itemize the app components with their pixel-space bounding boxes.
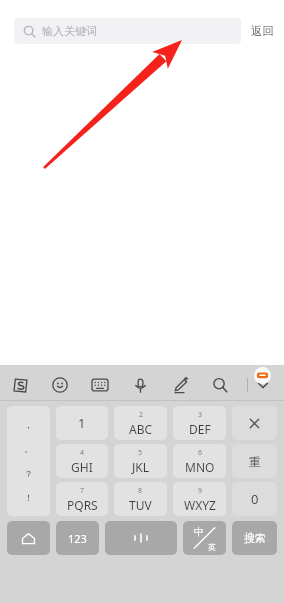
button[interactable]: Notification badge — [254, 367, 271, 384]
staticText: 。 — [24, 443, 33, 454]
button[interactable]: 123 — [56, 521, 99, 555]
staticText: 7 — [80, 486, 85, 496]
button[interactable]: Zero — [232, 482, 277, 516]
button[interactable]: Search — [200, 371, 240, 399]
button[interactable]: 搜索 — [232, 521, 277, 555]
button[interactable]: Sogou input method — [0, 371, 40, 399]
staticText: PQRS — [67, 497, 98, 513]
staticText: 8 — [138, 486, 143, 496]
staticText: 搜索 — [244, 531, 266, 545]
button[interactable]: Switch Chinese English — [183, 521, 226, 555]
button[interactable]: 返回 — [251, 24, 274, 38]
button[interactable]: Home — [7, 521, 50, 555]
button[interactable]: 8 — [114, 482, 167, 516]
staticText: 123 — [68, 531, 87, 546]
staticText: 6 — [198, 448, 203, 458]
button[interactable]: Handwriting — [160, 371, 200, 399]
staticText: 5 — [138, 448, 143, 458]
button[interactable]: 4 — [56, 444, 108, 478]
button[interactable]: 输入关键词 — [14, 18, 241, 44]
button[interactable]: Voice input — [120, 371, 160, 399]
staticText: ？ — [24, 468, 33, 479]
staticText: 重 — [249, 454, 261, 469]
staticText: JKL — [132, 459, 149, 475]
staticText: 2 — [139, 410, 144, 420]
button[interactable]: Collapse keyboard — [248, 371, 278, 399]
staticText: ABC — [129, 421, 153, 437]
staticText: MNO — [185, 459, 215, 475]
staticText: 英 — [208, 542, 216, 552]
staticText: 9 — [198, 486, 203, 496]
staticText: TUV — [129, 497, 152, 513]
button[interactable]: 1 — [56, 406, 108, 440]
button[interactable]: Space — [105, 521, 177, 555]
staticText: 返回 — [251, 24, 274, 38]
button[interactable]: 7 — [56, 482, 108, 516]
button[interactable]: ， — [7, 406, 50, 516]
button[interactable]: Symbols — [232, 444, 277, 478]
button[interactable]: 2 — [114, 406, 167, 440]
staticText: DEF — [189, 421, 211, 437]
button[interactable]: 5 — [114, 444, 167, 478]
button[interactable]: 9 — [173, 482, 226, 516]
button[interactable]: Emoji — [40, 371, 80, 399]
button[interactable]: 6 — [173, 444, 226, 478]
staticText: 3 — [198, 410, 203, 420]
staticText: 1 — [78, 414, 86, 432]
staticText: ！ — [24, 492, 33, 503]
button[interactable]: Keyboard layout — [80, 371, 120, 399]
staticText: 输入关键词 — [42, 24, 97, 38]
button[interactable]: Delete — [232, 406, 277, 440]
staticText: GHI — [71, 459, 93, 475]
staticText: 0 — [251, 490, 259, 508]
button[interactable]: 3 — [173, 406, 226, 440]
staticText: 中 — [194, 525, 204, 538]
staticText: WXYZ — [184, 497, 216, 513]
staticText: 4 — [80, 448, 85, 458]
staticText: ， — [24, 419, 33, 430]
